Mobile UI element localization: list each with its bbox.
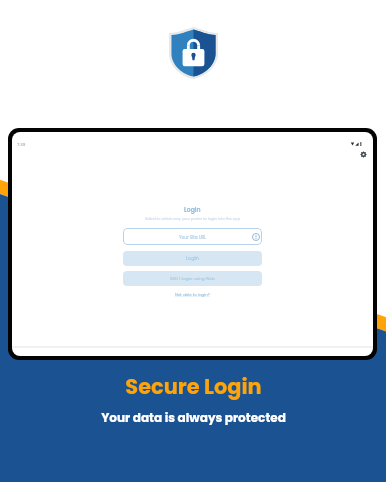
staticText: Not able to login? bbox=[175, 292, 210, 298]
staticText: SSO | Login using Web bbox=[170, 276, 215, 282]
button[interactable]: Settings bbox=[360, 151, 367, 158]
button[interactable]: Not able to login? bbox=[175, 292, 210, 298]
staticText: Secure Login bbox=[125, 372, 262, 401]
staticText: Login bbox=[186, 255, 199, 262]
staticText: 7:39 bbox=[17, 142, 26, 148]
staticText: Your Site URL bbox=[179, 234, 207, 240]
staticText: Login bbox=[184, 206, 201, 215]
button[interactable]: Login bbox=[123, 251, 262, 266]
button[interactable]: SSO | Login using Web bbox=[123, 271, 262, 286]
staticText: Select in which way your prefer to login… bbox=[145, 216, 241, 221]
button[interactable]: Your Site URL bbox=[123, 228, 262, 245]
staticText: Your data is always protected bbox=[101, 409, 286, 426]
